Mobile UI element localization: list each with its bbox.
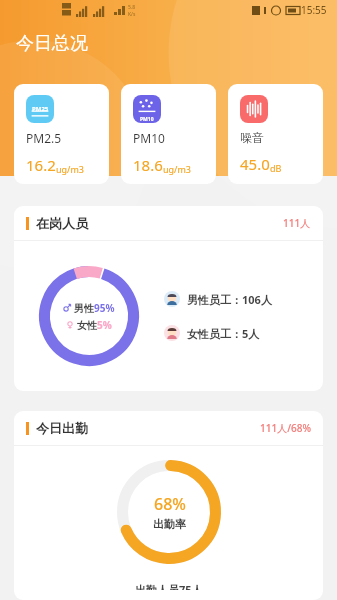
button[interactable]: 今日出勤 xyxy=(14,411,323,445)
staticText: 女性员工：5人 xyxy=(187,326,260,341)
staticText: PM10 xyxy=(133,130,165,146)
staticText: 在岗人员 xyxy=(36,215,88,231)
button[interactable]: PM25 xyxy=(14,84,109,184)
staticText: 95% xyxy=(94,301,115,315)
staticText: 111人 xyxy=(283,216,311,230)
staticText: 出勤率 xyxy=(153,517,186,531)
staticText: 今日总况 xyxy=(16,32,88,55)
button[interactable]: 在岗人员 xyxy=(14,206,323,240)
button[interactable]: 噪音 xyxy=(228,84,323,184)
staticText: 18.6 xyxy=(133,155,163,175)
staticText: 5% xyxy=(97,318,112,332)
staticText: 女性 xyxy=(77,319,97,332)
staticText: 111人/68% xyxy=(260,421,311,435)
staticText: 5.8 K/s xyxy=(128,4,136,17)
staticText: 45.0 xyxy=(240,154,270,174)
staticText: 出勤人员75人 xyxy=(135,582,203,590)
staticText: PM2.5 xyxy=(26,130,62,146)
button[interactable]: PM10 xyxy=(121,84,216,184)
staticText: 68% xyxy=(154,493,186,515)
staticText: 噪音 xyxy=(240,130,264,145)
staticText: 16.2 xyxy=(26,155,56,175)
staticText: 男性 xyxy=(74,302,94,315)
staticText: ug/m3 xyxy=(56,163,85,175)
staticText: PM25 xyxy=(32,105,49,113)
staticText: dB xyxy=(270,162,282,174)
staticText: 男性员工：106人 xyxy=(187,292,272,307)
staticText: ug/m3 xyxy=(163,163,192,175)
staticText: PM10 xyxy=(140,116,154,123)
staticText: 今日出勤 xyxy=(36,420,88,436)
staticText: 15:55 xyxy=(301,3,327,17)
